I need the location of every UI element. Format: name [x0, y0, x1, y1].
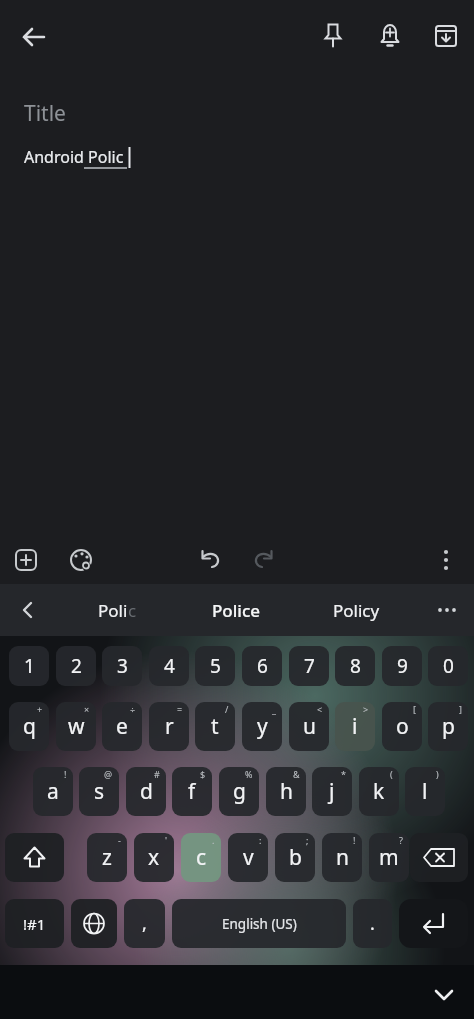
- staticText: 3: [117, 653, 128, 679]
- button[interactable]: y: [242, 702, 282, 751]
- button[interactable]: 6: [242, 646, 282, 686]
- staticText: ): [436, 768, 439, 780]
- staticText: (: [390, 768, 393, 780]
- button[interactable]: [244, 540, 284, 580]
- button[interactable]: 4: [149, 646, 189, 686]
- staticText: k: [373, 777, 385, 806]
- button[interactable]: n: [322, 833, 362, 882]
- button[interactable]: q: [9, 702, 49, 751]
- staticText: 7: [304, 653, 315, 679]
- button[interactable]: [190, 540, 230, 580]
- staticText: Android Polic: [24, 146, 124, 168]
- button[interactable]: [427, 590, 467, 630]
- button[interactable]: i: [335, 702, 375, 751]
- button[interactable]: [6, 540, 46, 580]
- button[interactable]: v: [228, 833, 268, 882]
- button[interactable]: [426, 540, 466, 580]
- button[interactable]: 5: [195, 646, 235, 686]
- button[interactable]: d: [126, 767, 166, 816]
- staticText: $: [200, 768, 206, 780]
- button[interactable]: 0: [428, 646, 468, 686]
- staticText: 6: [257, 653, 268, 679]
- button[interactable]: m: [369, 833, 409, 882]
- button[interactable]: 9: [382, 646, 422, 686]
- staticText: p: [442, 712, 455, 741]
- button[interactable]: [399, 899, 468, 948]
- button[interactable]: .: [353, 899, 392, 948]
- staticText: [: [413, 703, 416, 715]
- staticText: y: [257, 712, 268, 741]
- staticText: *: [341, 768, 346, 780]
- button[interactable]: [424, 974, 464, 1014]
- button[interactable]: u: [289, 702, 329, 751]
- button[interactable]: ,: [124, 899, 165, 948]
- button[interactable]: a: [33, 767, 73, 816]
- button[interactable]: r: [149, 702, 189, 751]
- button[interactable]: [71, 899, 117, 948]
- staticText: d: [140, 777, 153, 806]
- staticText: 0: [443, 653, 454, 679]
- staticText: l: [422, 777, 428, 806]
- staticText: ×: [84, 703, 90, 715]
- staticText: 2: [71, 653, 82, 679]
- button[interactable]: p: [428, 702, 468, 751]
- staticText: 5: [210, 653, 221, 679]
- staticText: =: [177, 703, 183, 715]
- button[interactable]: [14, 17, 54, 57]
- button[interactable]: [61, 540, 101, 580]
- button[interactable]: z: [87, 833, 127, 882]
- button[interactable]: English (US): [172, 899, 346, 948]
- button[interactable]: [410, 833, 468, 882]
- button[interactable]: t: [195, 702, 235, 751]
- staticText: 8: [350, 653, 361, 679]
- staticText: 4: [164, 653, 175, 679]
- button[interactable]: 8: [335, 646, 375, 686]
- staticText: Poli: [98, 599, 128, 622]
- staticText: s: [94, 777, 105, 806]
- button[interactable]: e: [102, 702, 142, 751]
- button[interactable]: 7: [289, 646, 329, 686]
- button[interactable]: [313, 16, 353, 56]
- button[interactable]: c: [181, 833, 221, 882]
- button[interactable]: s: [79, 767, 119, 816]
- button[interactable]: g: [219, 767, 259, 816]
- staticText: n: [336, 843, 349, 872]
- button[interactable]: 1: [9, 646, 49, 686]
- button[interactable]: [426, 16, 466, 56]
- button[interactable]: x: [134, 833, 174, 882]
- button[interactable]: k: [359, 767, 399, 816]
- button[interactable]: j: [312, 767, 352, 816]
- staticText: z: [102, 843, 112, 872]
- staticText: o: [396, 712, 409, 741]
- button[interactable]: o: [382, 702, 422, 751]
- staticText: u: [303, 712, 316, 741]
- staticText: @: [104, 768, 113, 780]
- staticText: &: [293, 768, 300, 780]
- staticText: !#1: [23, 914, 46, 934]
- staticText: v: [243, 843, 254, 872]
- staticText: !: [64, 768, 67, 780]
- button[interactable]: !#1: [5, 899, 64, 948]
- staticText: +: [37, 703, 43, 715]
- button[interactable]: h: [266, 767, 306, 816]
- button[interactable]: b: [275, 833, 315, 882]
- button[interactable]: Police: [178, 584, 294, 636]
- button[interactable]: l: [405, 767, 445, 816]
- staticText: <: [317, 703, 323, 715]
- staticText: ': [165, 834, 168, 846]
- button[interactable]: [8, 590, 48, 630]
- button[interactable]: Poli: [60, 584, 175, 636]
- button[interactable]: w: [56, 702, 96, 751]
- button[interactable]: [370, 16, 410, 56]
- button[interactable]: f: [172, 767, 212, 816]
- staticText: f: [188, 777, 196, 806]
- staticText: 1: [24, 653, 35, 679]
- button[interactable]: 2: [56, 646, 96, 686]
- staticText: m: [379, 843, 399, 872]
- button[interactable]: [5, 833, 64, 882]
- button[interactable]: 3: [102, 646, 142, 686]
- button[interactable]: Policy: [298, 584, 414, 636]
- staticText: c: [128, 599, 137, 622]
- staticText: :: [259, 834, 262, 846]
- staticText: !: [353, 834, 356, 846]
